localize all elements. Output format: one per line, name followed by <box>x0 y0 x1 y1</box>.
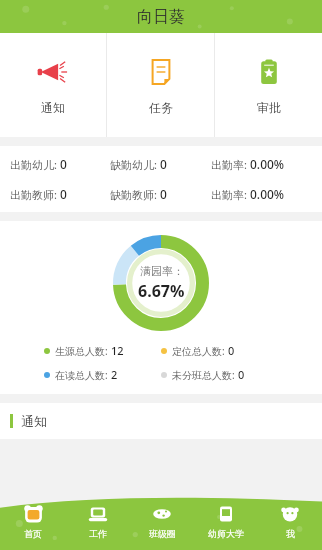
staticText: 0 <box>238 367 245 382</box>
button[interactable]: 工作 <box>65 503 130 550</box>
staticText: 0 <box>228 343 235 358</box>
staticText: 满园率： <box>140 264 184 278</box>
staticText: 0 <box>60 186 67 202</box>
button[interactable]: 任务 <box>107 33 214 137</box>
staticText: 通知 <box>21 413 47 429</box>
staticText: 缺勤教师: <box>110 187 160 202</box>
button[interactable]: 通知 <box>0 33 106 137</box>
staticText: 任务 <box>149 100 173 115</box>
button[interactable]: 首页 <box>0 503 65 550</box>
staticText: 幼师大学 <box>208 528 244 539</box>
staticText: 工作 <box>89 528 107 539</box>
staticText: 缺勤幼儿: <box>110 157 160 172</box>
staticText: 出勤率: <box>211 187 250 202</box>
button[interactable]: 幼师大学 <box>194 503 258 550</box>
staticText: 出勤教师: <box>10 187 60 202</box>
staticText: 首页 <box>24 528 42 539</box>
staticText: 6.67% <box>138 280 185 302</box>
staticText: 生源总人数: <box>55 344 111 358</box>
staticText: 0 <box>160 156 167 172</box>
staticText: 12 <box>111 343 124 358</box>
staticText: 2 <box>111 367 118 382</box>
button[interactable]: 审批 <box>215 33 322 137</box>
staticText: 在读总人数: <box>55 368 111 382</box>
staticText: 0 <box>60 156 67 172</box>
button[interactable]: 班级圈 <box>130 503 194 550</box>
button[interactable]: 我 <box>258 503 322 550</box>
staticText: 审批 <box>257 100 281 115</box>
staticText: 0.00% <box>250 156 285 172</box>
staticText: 0 <box>160 186 167 202</box>
staticText: 出勤率: <box>211 157 250 172</box>
staticText: 通知 <box>41 100 65 115</box>
staticText: 班级圈 <box>149 528 176 539</box>
staticText: 定位总人数: <box>172 344 228 358</box>
staticText: 0.00% <box>250 186 285 202</box>
staticText: 我 <box>286 528 295 539</box>
staticText: 未分班总人数: <box>172 368 238 382</box>
staticText: 向日葵 <box>137 7 185 27</box>
staticText: 出勤幼儿: <box>10 157 60 172</box>
